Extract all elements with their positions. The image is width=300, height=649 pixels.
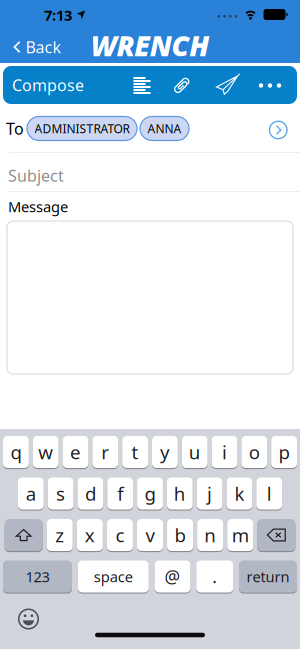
staticText: To	[6, 118, 24, 139]
button[interactable]	[269, 121, 287, 139]
button[interactable]: Compose	[3, 66, 297, 104]
staticText: m	[232, 523, 249, 547]
button[interactable]: o	[241, 435, 267, 469]
button[interactable]	[259, 83, 281, 88]
button[interactable]: t	[122, 435, 148, 469]
staticText: v	[145, 523, 154, 547]
staticText: ADMINISTRATOR	[34, 120, 129, 136]
staticText: a	[26, 481, 36, 506]
button[interactable]: q	[3, 435, 29, 469]
staticText: d	[85, 481, 96, 506]
button[interactable]: s	[48, 477, 73, 510]
button[interactable]	[175, 74, 187, 97]
button[interactable]: space	[78, 560, 149, 593]
button[interactable]: @	[154, 560, 190, 593]
button[interactable]: h	[167, 477, 193, 510]
button[interactable]: k	[226, 477, 252, 510]
button[interactable]: n	[197, 518, 223, 552]
staticText: @	[164, 565, 180, 588]
button[interactable]: y	[152, 435, 178, 469]
staticText: r	[101, 440, 109, 464]
staticText: c	[115, 523, 124, 547]
button[interactable]: Back	[13, 36, 61, 58]
staticText: WRENCH	[91, 27, 209, 64]
staticText: 123	[25, 567, 49, 586]
button[interactable]: z	[47, 518, 73, 552]
staticText: ANNA	[147, 120, 181, 136]
button[interactable]: w	[33, 435, 59, 469]
staticText: i	[222, 440, 227, 464]
staticText: p	[279, 440, 290, 464]
staticText: y	[160, 440, 170, 464]
staticText: Back	[25, 36, 61, 58]
button[interactable]: b	[167, 518, 193, 552]
staticText: l	[267, 481, 272, 506]
staticText: k	[234, 481, 244, 506]
button[interactable]: .	[196, 560, 233, 593]
button[interactable]: u	[182, 435, 208, 469]
staticText: o	[249, 440, 260, 464]
button[interactable]: x	[77, 518, 103, 552]
staticText: b	[175, 523, 186, 547]
staticText: x	[85, 523, 95, 547]
staticText: t	[132, 440, 139, 464]
button[interactable]: j	[197, 477, 222, 510]
staticText: 7:13	[44, 5, 72, 25]
button[interactable]	[216, 75, 238, 94]
staticText: h	[174, 481, 186, 506]
button[interactable]: e	[63, 435, 88, 469]
staticText: .	[212, 565, 217, 588]
button[interactable]: v	[137, 518, 163, 552]
button[interactable]: g	[137, 477, 163, 510]
button[interactable]: p	[271, 435, 297, 469]
staticText: f	[117, 481, 123, 506]
staticText: Subject	[8, 165, 64, 186]
button[interactable]: m	[227, 518, 253, 552]
button[interactable]: f	[107, 477, 133, 510]
staticText: s	[56, 481, 65, 506]
button[interactable]: i	[212, 435, 237, 469]
button[interactable]	[257, 518, 295, 552]
staticText: e	[70, 440, 81, 464]
staticText: return	[246, 567, 289, 586]
staticText: w	[38, 440, 53, 464]
button[interactable]	[18, 609, 39, 629]
staticText: Message	[8, 197, 68, 216]
staticText: g	[144, 481, 155, 506]
staticText: n	[204, 523, 216, 547]
button[interactable]: Subject	[0, 153, 300, 191]
button[interactable]	[5, 518, 43, 552]
staticText: u	[189, 440, 201, 464]
button[interactable]: c	[107, 518, 133, 552]
staticText: j	[207, 481, 212, 506]
button[interactable]: return	[239, 560, 297, 593]
button[interactable]: l	[256, 477, 282, 510]
staticText: space	[94, 567, 133, 586]
button[interactable]	[133, 77, 150, 94]
button[interactable]: a	[18, 477, 44, 510]
button[interactable]: r	[92, 435, 118, 469]
button[interactable]: ADMINISTRATOR	[27, 116, 137, 140]
button[interactable]: ANNA	[140, 116, 189, 140]
button[interactable]: d	[77, 477, 103, 510]
button[interactable]: 123	[3, 560, 72, 593]
staticText: q	[10, 440, 21, 464]
staticText: Compose	[12, 74, 84, 96]
staticText: z	[55, 523, 64, 547]
